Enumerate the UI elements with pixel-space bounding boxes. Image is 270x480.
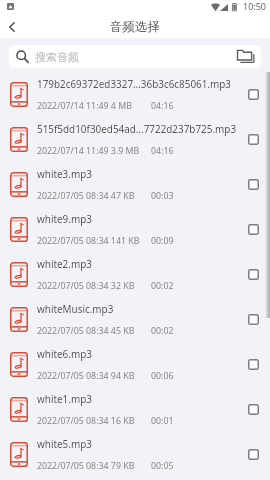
staticText: 2022/07/05 08:34 141 KB (37, 235, 140, 247)
staticText: 2022/07/14 11:49 3.9 MB (37, 145, 140, 157)
staticText: 00:09 (151, 235, 174, 247)
button[interactable]: Select audio (240, 72, 266, 117)
button[interactable]: Select audio (240, 207, 266, 252)
button[interactable]: 179b2c69372ed3327…36b3c6c85061.mp3 (0, 72, 270, 117)
button[interactable]: 515f5dd10f30ed54ad…7722d237b725.mp3 (0, 117, 270, 162)
button[interactable]: Back (0, 16, 24, 38)
staticText: 2022/07/05 08:34 79 KB (37, 460, 135, 472)
button[interactable]: Select audio (240, 387, 266, 432)
staticText: white1.mp3 (37, 392, 92, 405)
staticText: 搜索音频 (35, 50, 79, 64)
staticText: white3.mp3 (37, 167, 92, 180)
staticText: 00:06 (151, 370, 174, 382)
staticText: 179b2c69372ed3327…36b3c6c85061.mp3 (37, 77, 231, 90)
staticText: 00:02 (151, 325, 174, 337)
button[interactable]: whiteMusic.mp3 (0, 297, 270, 342)
button[interactable]: Select audio (240, 252, 266, 297)
staticText: white5.mp3 (37, 437, 92, 450)
button[interactable]: Select audio (240, 297, 266, 342)
staticText: white2.mp3 (37, 257, 92, 270)
staticText: 515f5dd10f30ed54ad…7722d237b725.mp3 (37, 122, 237, 135)
button[interactable]: white2.mp3 (0, 252, 270, 297)
button[interactable]: white6.mp3 (0, 342, 270, 387)
staticText: whiteMusic.mp3 (37, 302, 114, 315)
staticText: 2022/07/14 11:49 4 MB (37, 100, 132, 112)
button[interactable]: white3.mp3 (0, 162, 270, 207)
button[interactable]: white5.mp3 (0, 432, 270, 477)
button[interactable]: white1.mp3 (0, 387, 270, 432)
staticText: 00:02 (151, 280, 174, 292)
staticText: white6.mp3 (37, 347, 92, 360)
staticText: 04:16 (151, 145, 174, 157)
staticText: 10:50 (243, 0, 267, 12)
staticText: 00:01 (151, 415, 174, 427)
staticText: 04:16 (151, 100, 174, 112)
staticText: 2022/07/05 08:34 94 KB (37, 370, 135, 382)
staticText: 00:03 (151, 190, 174, 202)
staticText: 00:05 (151, 460, 174, 472)
staticText: white9.mp3 (37, 212, 92, 225)
staticText: 2022/07/05 08:34 45 KB (37, 325, 135, 337)
button[interactable]: Select audio (240, 162, 266, 207)
staticText: 2022/07/05 08:34 47 KB (37, 190, 135, 202)
button[interactable]: Select audio (240, 342, 266, 387)
button[interactable]: Select audio (240, 117, 266, 162)
staticText: 音频选择 (110, 19, 160, 35)
button[interactable]: Browse folders (230, 45, 261, 68)
button[interactable]: 搜索音频 (9, 45, 261, 68)
staticText: 2022/07/05 08:34 32 KB (37, 280, 135, 292)
button[interactable]: Select audio (240, 432, 266, 477)
button[interactable]: white9.mp3 (0, 207, 270, 252)
staticText: 2022/07/05 08:34 16 KB (37, 415, 135, 427)
